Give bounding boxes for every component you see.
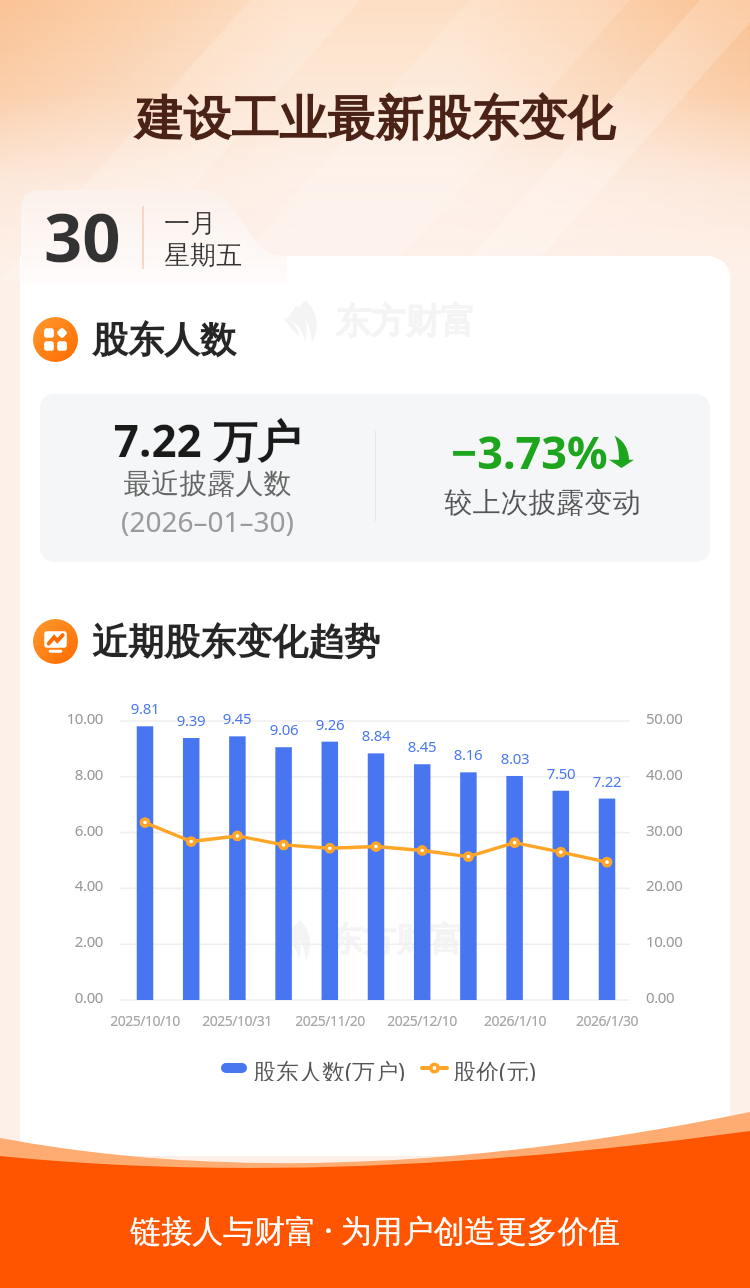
staticText: 2.00 [43,931,103,951]
button[interactable]: 股价(元) [422,1055,536,1081]
staticText: 8.84 [351,725,401,745]
staticText: 2025/10/10 [95,1011,195,1030]
staticText: 8.03 [490,748,540,768]
staticText: 股东人数 [92,317,236,362]
button[interactable]: 股东人数 [33,317,236,362]
staticText: 9.45 [212,708,262,728]
staticText: 10.00 [646,931,706,951]
staticText: 2025/12/10 [372,1011,472,1030]
staticText: 2025/10/31 [187,1011,287,1030]
staticText: 近期股东变化趋势 [92,619,380,664]
staticText: 最近披露人数 [40,466,375,501]
staticText: 30 [44,190,121,281]
staticText: 0.00 [646,987,706,1007]
staticText: 一月 [164,207,216,240]
staticText: 东方财富 [329,919,464,961]
staticText: 股价(元) [453,1055,536,1081]
staticText: 9.26 [305,714,355,734]
staticText: 6.00 [43,820,103,840]
staticText: (2026–01–30) [40,502,375,540]
staticText: 7.50 [536,763,586,783]
staticText: 9.39 [166,710,216,730]
staticText: 建设工业最新股东变化 [0,89,750,149]
staticText: 星期五 [164,239,242,272]
staticText: 30.00 [646,820,706,840]
staticText: 2026/1/30 [557,1011,657,1030]
staticText: 50.00 [646,708,706,728]
staticText: 9.06 [259,719,309,739]
button[interactable]: 近期股东变化趋势 [33,619,380,664]
staticText: 2026/1/10 [465,1011,565,1030]
button[interactable]: 30 [0,190,330,285]
staticText: 9.81 [120,698,170,718]
staticText: 40.00 [646,764,706,784]
staticText: 8.00 [43,764,103,784]
staticText: 20.00 [646,875,706,895]
staticText: 2025/11/20 [280,1011,380,1030]
staticText: 7.22 [582,771,632,791]
other: 股东人数 [33,317,78,362]
staticText: −3.73% [451,421,608,482]
button[interactable]: 股东人数(万户) [221,1055,405,1081]
staticText: 链接人与财富 · 为用户创造更多价值 [0,1209,750,1251]
staticText: 10.00 [43,708,103,728]
staticText: 较上次披露变动 [375,485,710,520]
staticText: 4.00 [43,875,103,895]
staticText: 东方财富 [335,299,476,343]
staticText: 8.16 [443,744,493,764]
staticText: 8.45 [397,736,447,756]
staticText: 股东人数(万户) [253,1055,405,1081]
staticText: 0.00 [43,987,103,1007]
staticText: 7.22 万户 [40,410,375,470]
other: 近期股东变化趋势 [33,619,78,664]
